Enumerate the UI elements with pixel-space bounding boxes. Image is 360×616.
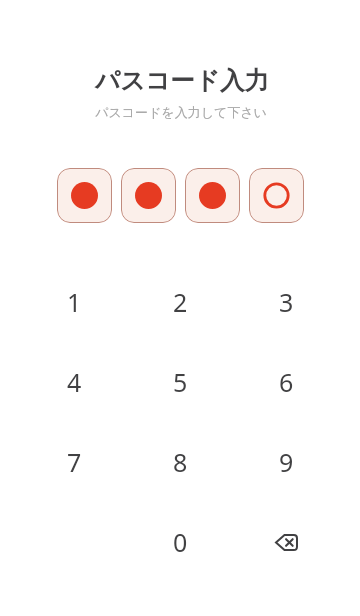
staticText: 1 [67, 285, 82, 319]
staticText: 4 [67, 365, 82, 399]
staticText: パスコードを入力して下さい [95, 104, 267, 120]
staticText: 8 [173, 445, 188, 479]
button[interactable]: 7 [21, 422, 127, 502]
button[interactable]: 5 [127, 342, 233, 422]
button[interactable] [185, 168, 240, 223]
staticText: 3 [279, 285, 294, 319]
staticText: 0 [173, 525, 188, 559]
button[interactable]: 4 [21, 342, 127, 422]
staticText: 5 [173, 365, 188, 399]
button[interactable]: Backspace [233, 502, 339, 582]
button[interactable] [57, 168, 112, 223]
staticText: パスコード入力 [95, 65, 269, 96]
staticText: 6 [279, 365, 294, 399]
button[interactable]: 3 [233, 262, 339, 342]
button[interactable]: 0 [127, 502, 233, 582]
staticText: 9 [279, 445, 294, 479]
button[interactable]: 6 [233, 342, 339, 422]
button[interactable] [249, 168, 304, 223]
button[interactable] [121, 168, 176, 223]
button[interactable]: 8 [127, 422, 233, 502]
button[interactable]: 9 [233, 422, 339, 502]
staticText: 2 [173, 285, 188, 319]
button[interactable]: 1 [21, 262, 127, 342]
staticText: 7 [67, 445, 82, 479]
button[interactable]: 2 [127, 262, 233, 342]
